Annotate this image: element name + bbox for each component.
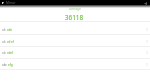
staticText: efg (8, 63, 13, 67)
staticText: cde (7, 28, 12, 32)
button[interactable]: abc (0, 59, 150, 70)
staticText: abc (2, 63, 7, 67)
staticText: 36118 (0, 13, 148, 22)
button[interactable]: ab (0, 24, 150, 35)
button[interactable]: ab (0, 47, 150, 58)
staticText: Mirror (6, 1, 16, 5)
button[interactable]: ab (0, 36, 150, 47)
staticText: average (0, 7, 150, 11)
staticText: ab (2, 40, 6, 44)
button[interactable]: Navigate up (1, 1, 5, 5)
staticText: ab (2, 51, 6, 55)
staticText: cd ef (7, 40, 14, 44)
staticText: cdef (7, 51, 14, 55)
button[interactable]: More options (143, 1, 147, 5)
staticText: ab (2, 28, 6, 32)
